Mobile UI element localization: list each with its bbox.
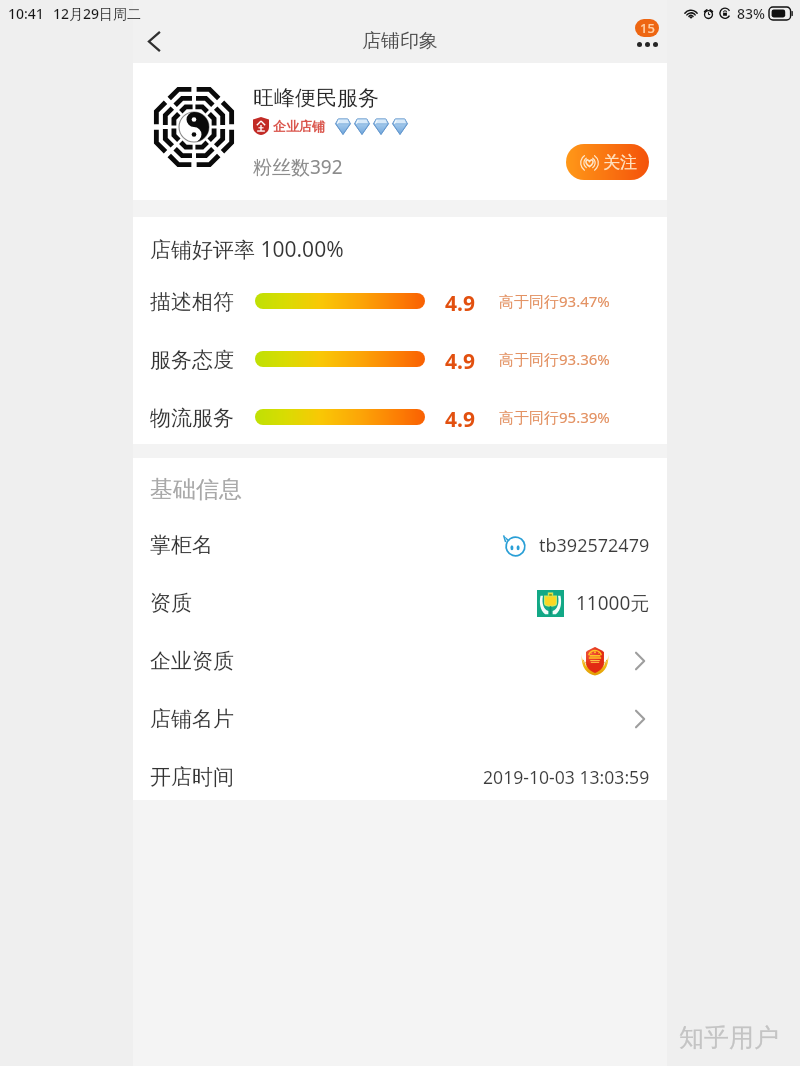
staticText: 企业资质 bbox=[150, 648, 234, 674]
button[interactable]: 资质 bbox=[133, 574, 667, 632]
staticText: 4.9 bbox=[445, 347, 475, 371]
staticText: 高于同行93.36% bbox=[499, 349, 610, 369]
staticText: 基础信息 bbox=[150, 475, 242, 504]
button[interactable]: 掌柜名 bbox=[133, 516, 667, 574]
staticText: 店铺印象 bbox=[362, 29, 438, 53]
button[interactable]: 企业资质 bbox=[133, 632, 667, 690]
staticText: 12月29日周二 bbox=[53, 4, 142, 23]
staticText: 知乎用户 bbox=[679, 1022, 779, 1053]
button[interactable]: More options bbox=[624, 17, 668, 51]
staticText: 11000元 bbox=[576, 590, 650, 616]
button[interactable]: Back bbox=[132, 19, 176, 63]
staticText: 高于同行95.39% bbox=[499, 407, 610, 427]
staticText: 店铺好评率 100.00% bbox=[150, 235, 344, 264]
staticText: 描述相符 bbox=[150, 289, 234, 313]
staticText: 企业店铺 bbox=[273, 118, 325, 134]
staticText: 高于同行93.47% bbox=[499, 291, 610, 311]
staticText: 15 bbox=[640, 19, 655, 37]
staticText: 4.9 bbox=[445, 289, 475, 313]
staticText: tb392572479 bbox=[539, 533, 650, 558]
staticText: 83% bbox=[737, 4, 765, 23]
button[interactable]: 店铺名片 bbox=[133, 690, 667, 748]
staticText: 物流服务 bbox=[150, 405, 234, 429]
staticText: 开店时间 bbox=[150, 764, 234, 790]
staticText: 粉丝数392 bbox=[253, 154, 343, 180]
staticText: 旺峰便民服务 bbox=[253, 85, 379, 111]
staticText: 关注 bbox=[603, 152, 637, 173]
button[interactable]: 关注 bbox=[566, 144, 649, 180]
staticText: 4.9 bbox=[445, 405, 475, 429]
staticText: 服务态度 bbox=[150, 347, 234, 371]
staticText: 资质 bbox=[150, 590, 192, 616]
staticText: 店铺名片 bbox=[150, 706, 234, 732]
staticText: 掌柜名 bbox=[150, 532, 213, 558]
staticText: 10:41 bbox=[8, 4, 44, 23]
button[interactable]: 开店时间 bbox=[133, 748, 667, 806]
staticText: 2019-10-03 13:03:59 bbox=[483, 765, 650, 789]
